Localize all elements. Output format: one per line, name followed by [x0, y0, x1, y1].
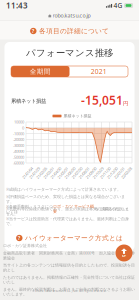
- staticText: 4G: [114, 1, 123, 10]
- staticText: 21/09/30: [84, 170, 98, 176]
- button[interactable]: 全期間: [11, 66, 69, 77]
- staticText: 全期間: [30, 67, 51, 76]
- staticText: パフォーマンス推移: [26, 47, 113, 59]
- staticText: ※成績はハイウォーターマーク方式によって計算されています。: [6, 187, 121, 192]
- staticText: 21/01/04: [20, 170, 34, 176]
- staticText: 円: [123, 100, 128, 107]
- staticText: 金融商品取引業者 関東財務局長（金商）第0000号 加入協会：日本証券業協会: [3, 250, 135, 261]
- staticText: © Robo Katsu Securities Co., Ltd. All ri…: [32, 289, 106, 293]
- staticText: ※評価損益ベースのため、実現した損益とは異なる場合がございます。: [6, 194, 125, 204]
- button[interactable]: 2021: [69, 66, 128, 77]
- staticText: ※各種手数料・リスクについては: [6, 204, 53, 214]
- staticText: 21/11/30: [98, 170, 112, 176]
- staticText: 21/12/30: [105, 170, 119, 176]
- staticText: 10000: [14, 119, 24, 125]
- staticText: -30000: [13, 143, 24, 148]
- staticText: 22/02/28: [119, 170, 133, 176]
- staticText: ※手数料等控除後の数値であり、過去の実績は将来の成果を保証しません。: [6, 206, 129, 216]
- staticText: -60000: [13, 160, 24, 166]
- staticText: TOP: [121, 254, 126, 258]
- staticText: ハイウォーターマーク方式とは: [25, 234, 123, 242]
- staticText: 21/08/31: [77, 170, 91, 176]
- staticText: 21/01/29: [28, 170, 42, 176]
- staticText: 21/07/30: [70, 170, 84, 176]
- staticText: たものではありません。掲載情報の正確性・完全性等について当社は保証いたし: [3, 275, 135, 285]
- staticText: robo.katsu.co.jp: [53, 12, 91, 19]
- staticText: 21/05/31: [56, 170, 70, 176]
- staticText: 0: [22, 125, 24, 130]
- staticText: 21/04/30: [49, 170, 63, 176]
- staticText: 当サイト上の各コンテンツは情報提供を目的としたもので、投資勧誘を目的とし: [3, 263, 135, 273]
- staticText: ?: [32, 27, 35, 35]
- staticText: -40000: [13, 149, 24, 154]
- staticText: 累積ネット損益: [63, 113, 91, 118]
- staticText: ?: [18, 234, 21, 242]
- staticText: 11:43: [6, 0, 28, 11]
- button[interactable]: ?: [9, 232, 129, 244]
- staticText: -20000: [13, 137, 24, 142]
- staticText: 21/10/29: [91, 170, 105, 176]
- staticText: 21/02/26: [35, 170, 49, 176]
- button[interactable]: Scroll to top: [115, 244, 132, 261]
- staticText: -50000: [13, 154, 24, 160]
- staticText: ロボ・カツ サービス概要: [53, 204, 94, 214]
- staticText: 21/03/31: [42, 170, 56, 176]
- staticText: -10000: [13, 131, 24, 136]
- staticText: 累積ネット損益: [11, 98, 46, 104]
- button[interactable]: ?: [0, 24, 139, 37]
- staticText: ません。最終的な投資判断は、お客さまご自身の判断でなさるようお願いいたします。: [3, 287, 135, 297]
- staticText: ロボ・カツ証券株式会社: [3, 243, 47, 248]
- staticText: 2021: [91, 67, 107, 76]
- staticText: 22/01/31: [112, 170, 126, 176]
- staticText: 21/06/30: [63, 170, 77, 176]
- staticText: ※当サービスは投資助言・代理業ではありません。最終判断はご自身で。: [6, 216, 129, 226]
- staticText: 各項目の詳細について: [39, 27, 109, 35]
- staticText: をご確認ください。: [94, 206, 131, 211]
- staticText: -15,051: [81, 92, 123, 108]
